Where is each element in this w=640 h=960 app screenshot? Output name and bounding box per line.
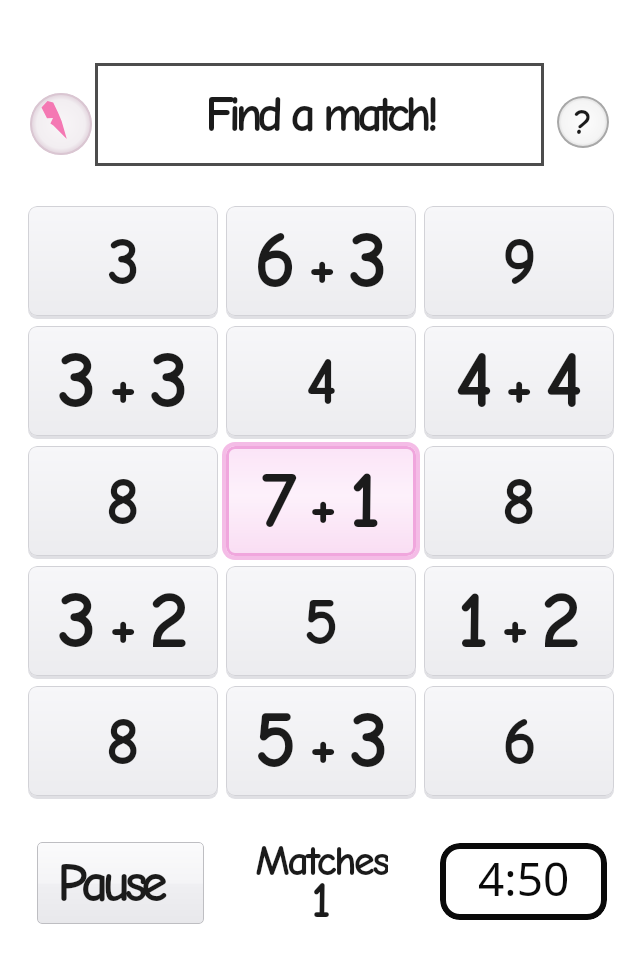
button[interactable]: 7: [226, 446, 416, 556]
staticText: 8: [106, 705, 140, 781]
staticText: 5: [303, 585, 339, 661]
staticText: 8: [106, 465, 140, 541]
staticText: +: [309, 710, 337, 782]
button[interactable]: 8: [424, 446, 614, 556]
button[interactable]: 1: [424, 566, 614, 676]
staticText: 3: [348, 215, 388, 307]
button[interactable]: 4: [424, 326, 614, 436]
staticText: Pause: [57, 852, 162, 914]
button[interactable]: Pause: [37, 842, 204, 924]
button[interactable]: 6: [424, 686, 614, 796]
staticText: 4:50: [478, 847, 570, 910]
button[interactable]: 3: [28, 206, 218, 316]
staticText: 3: [149, 335, 189, 427]
staticText: 8: [502, 465, 536, 541]
staticText: 5: [254, 695, 297, 787]
staticText: 3: [57, 335, 97, 427]
staticText: ?: [574, 102, 592, 143]
staticText: 4: [306, 345, 337, 421]
button[interactable]: 3: [28, 326, 218, 436]
staticText: 6: [254, 215, 296, 307]
staticText: 4: [545, 335, 583, 427]
button[interactable]: 3: [28, 566, 218, 676]
staticText: +: [109, 350, 137, 422]
button[interactable]: 9: [424, 206, 614, 316]
staticText: 2: [541, 575, 581, 667]
staticText: 3: [349, 695, 389, 787]
button[interactable]: [30, 93, 92, 155]
staticText: 1: [349, 455, 381, 547]
staticText: +: [109, 590, 137, 662]
button[interactable]: 6: [226, 206, 416, 316]
staticText: 1: [311, 872, 331, 924]
staticText: 3: [57, 575, 97, 667]
staticText: 3: [107, 225, 140, 301]
staticText: 1: [457, 575, 489, 667]
staticText: Matches: [255, 836, 388, 882]
button[interactable]: 8: [28, 686, 218, 796]
button[interactable]: 4: [226, 326, 416, 436]
staticText: +: [505, 350, 533, 422]
staticText: 2: [149, 575, 189, 667]
staticText: 7: [261, 455, 297, 547]
staticText: 9: [502, 225, 537, 301]
staticText: 4: [455, 335, 493, 427]
button[interactable]: 8: [28, 446, 218, 556]
button[interactable]: 5: [226, 686, 416, 796]
staticText: 6: [502, 705, 537, 781]
button[interactable]: 4:50: [440, 843, 607, 920]
staticText: Find a match!: [205, 86, 434, 144]
button[interactable]: 5: [226, 566, 416, 676]
staticText: +: [501, 590, 529, 662]
button[interactable]: ?: [557, 96, 609, 148]
staticText: +: [309, 470, 337, 542]
staticText: +: [308, 230, 336, 302]
